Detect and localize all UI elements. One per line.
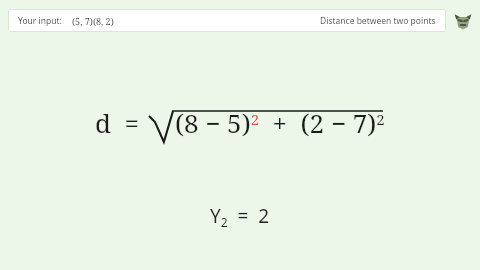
- button[interactable]: Your input:: [8, 9, 446, 32]
- staticText: Your input:: [18, 15, 62, 27]
- staticText: (8 − 5)2 + (2 − 7)2: [175, 105, 385, 140]
- staticText: Distance between two points: [320, 15, 436, 27]
- staticText: Y2 = 2: [210, 203, 270, 231]
- staticText: (5, 7)(8, 2): [72, 15, 114, 27]
- button[interactable]: App logo: [452, 10, 474, 32]
- staticText: d =: [95, 105, 140, 140]
